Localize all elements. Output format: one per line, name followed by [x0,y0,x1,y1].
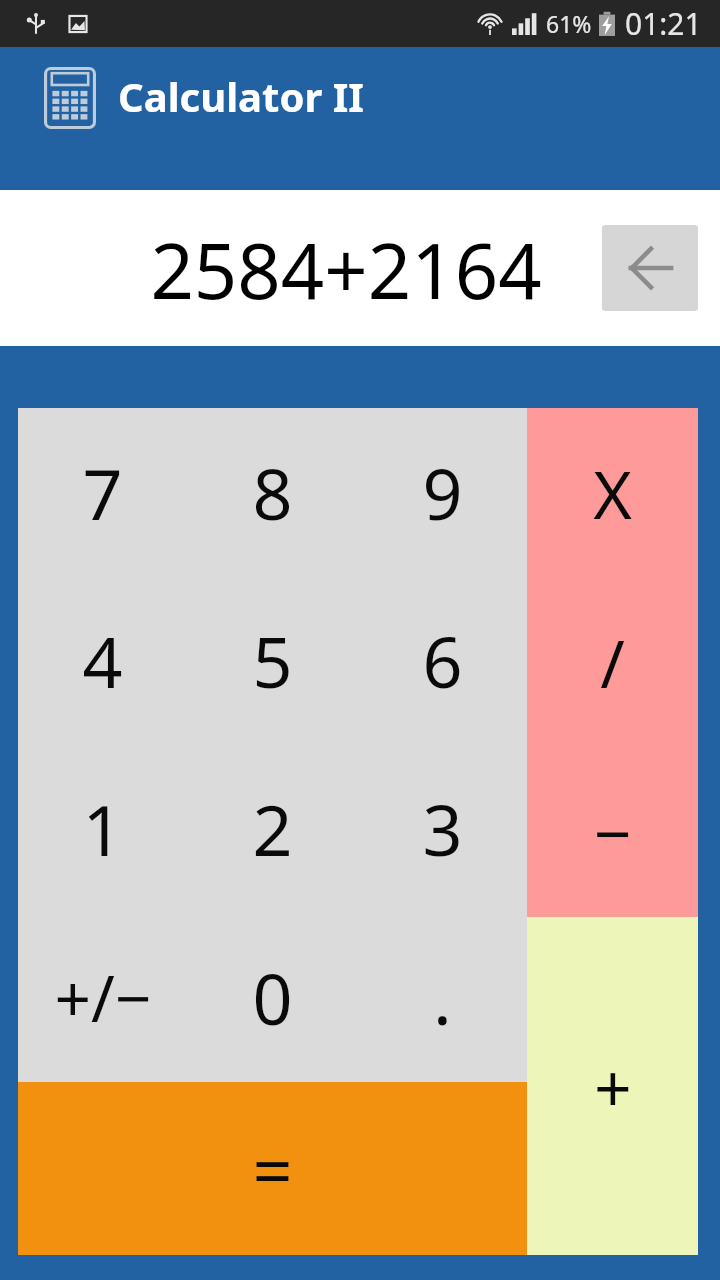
button[interactable]: 7 [18,408,187,576]
button[interactable]: 5 [187,576,357,744]
staticText: 6 [422,613,463,708]
button[interactable]: = [18,1082,527,1255]
button[interactable]: 6 [357,576,527,744]
button[interactable]: − [527,747,698,917]
button[interactable]: 2 [187,744,357,913]
button[interactable]: 4 [18,576,187,744]
button[interactable]: 8 [187,408,357,576]
staticText: 01:21 [625,3,702,44]
button[interactable]: 3 [357,744,527,913]
button[interactable]: X [527,408,698,577]
button[interactable]: Backspace [602,225,698,311]
staticText: Calculator II [118,69,364,123]
button[interactable]: 0 [187,913,357,1082]
staticText: X [593,448,632,538]
staticText: 61% [546,8,592,39]
staticText: . [433,950,452,1045]
button[interactable]: . [357,913,527,1082]
button[interactable]: / [527,577,698,747]
staticText: 3 [422,781,463,876]
staticText: 5 [252,613,293,708]
button[interactable]: 1 [18,744,187,913]
staticText: 0 [252,950,293,1045]
staticText: 9 [422,445,463,540]
staticText: 2 [252,781,293,876]
staticText: 7 [82,445,123,540]
staticText: − [594,787,632,877]
button[interactable]: + [527,917,698,1255]
staticText: 2584+2164 [150,218,542,322]
staticText: 4 [82,613,123,708]
staticText: + [594,1041,632,1131]
staticText: +/− [54,954,152,1041]
button[interactable]: +/− [18,913,187,1082]
staticText: 8 [252,445,293,540]
staticText: = [252,1121,293,1216]
staticText: / [600,617,625,707]
staticText: 1 [82,781,123,876]
button[interactable]: 9 [357,408,527,576]
